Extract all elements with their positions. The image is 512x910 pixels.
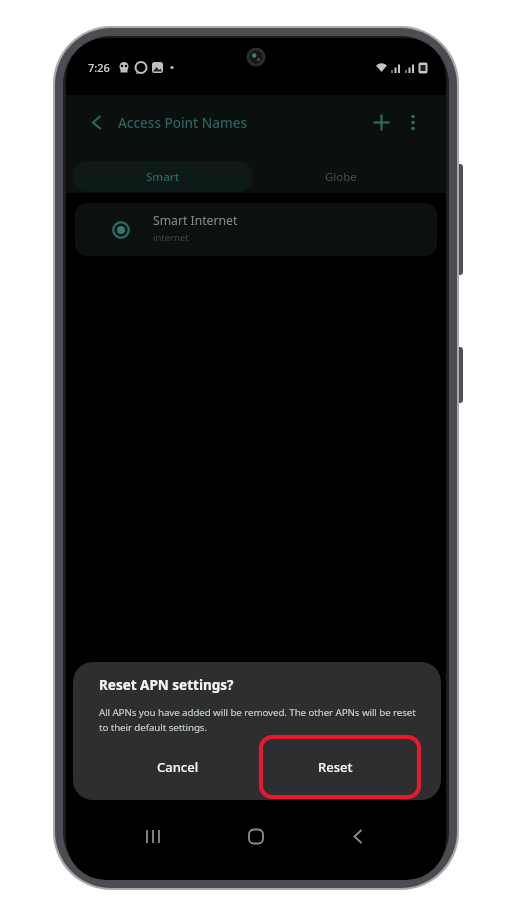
button[interactable]: Smart (72, 161, 253, 192)
staticText: Globe (325, 169, 357, 185)
button[interactable] (353, 829, 363, 844)
staticText: internet (153, 231, 189, 244)
button[interactable] (248, 829, 264, 844)
staticText: Access Point Names (118, 114, 248, 132)
button[interactable]: Access Point Names (118, 111, 248, 134)
staticText: Reset (318, 758, 353, 776)
staticText: Smart (146, 169, 180, 185)
staticText: Smart Internet (153, 212, 238, 229)
staticText: 7:26 (88, 60, 110, 75)
staticText: to their default settings. (99, 721, 207, 734)
button[interactable] (373, 114, 390, 131)
staticText: Reset APN settings? (99, 676, 234, 694)
button[interactable]: Cancel (128, 752, 228, 782)
staticText: All APNs you have added will be removed.… (99, 706, 416, 719)
button[interactable] (146, 829, 160, 844)
button[interactable]: Globe (253, 161, 429, 192)
button[interactable] (90, 115, 104, 130)
button[interactable]: Reset (285, 752, 385, 782)
button[interactable]: Smart Internet (75, 203, 437, 256)
staticText: Cancel (157, 758, 199, 776)
button[interactable] (408, 114, 418, 131)
